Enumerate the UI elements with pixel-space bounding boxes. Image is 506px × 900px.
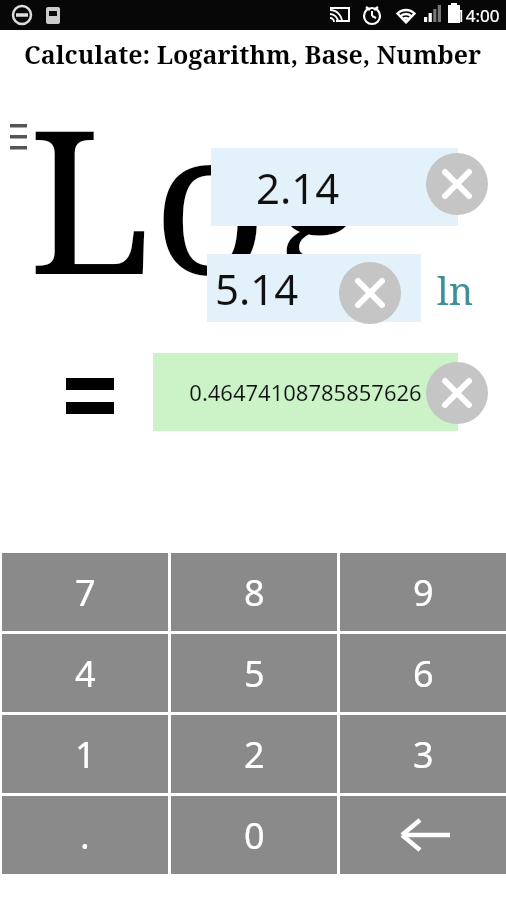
button[interactable]: 2 — [171, 715, 337, 793]
button[interactable]: . — [2, 796, 168, 874]
button[interactable]: Clear number — [426, 153, 488, 215]
button[interactable]: 0 — [171, 796, 337, 874]
staticText: 7 — [75, 568, 96, 617]
button[interactable]: 9 — [340, 553, 506, 631]
staticText: . — [80, 811, 90, 860]
staticText: 1 — [75, 730, 96, 779]
button[interactable]: 2.14 — [211, 148, 458, 226]
staticText: 2.14 — [256, 159, 340, 216]
button[interactable]: 1 — [2, 715, 168, 793]
button[interactable]: Backspace — [340, 796, 506, 874]
staticText: 5.14 — [215, 260, 299, 317]
staticText: 3 — [413, 730, 434, 779]
staticText: Calculate: Logarithm, Base, Number — [24, 37, 482, 71]
button[interactable]: Clear result — [426, 362, 488, 424]
staticText: 0 — [244, 811, 265, 860]
staticText: 6 — [413, 649, 434, 698]
button[interactable]: Clear base — [339, 262, 401, 324]
button[interactable]: ln — [424, 260, 486, 320]
other: Backspace — [340, 796, 506, 874]
staticText: 2 — [244, 730, 265, 779]
staticText: 8 — [244, 568, 265, 617]
staticText: Log — [28, 60, 376, 332]
button[interactable]: 7 — [2, 553, 168, 631]
button[interactable]: 0.46474108785857626 — [153, 353, 458, 431]
button[interactable]: 8 — [171, 553, 337, 631]
button[interactable]: 3 — [340, 715, 506, 793]
staticText: 4 — [75, 649, 96, 698]
staticText: 14:00 — [456, 4, 500, 27]
button[interactable]: 4 — [2, 634, 168, 712]
button[interactable]: 6 — [340, 634, 506, 712]
button[interactable]: 5 — [171, 634, 337, 712]
staticText: 5 — [244, 649, 265, 698]
staticText: ln — [437, 264, 474, 316]
staticText: 9 — [413, 568, 434, 617]
staticText: 0.46474108785857626 — [189, 377, 422, 407]
button[interactable]: 5.14 — [207, 254, 421, 322]
